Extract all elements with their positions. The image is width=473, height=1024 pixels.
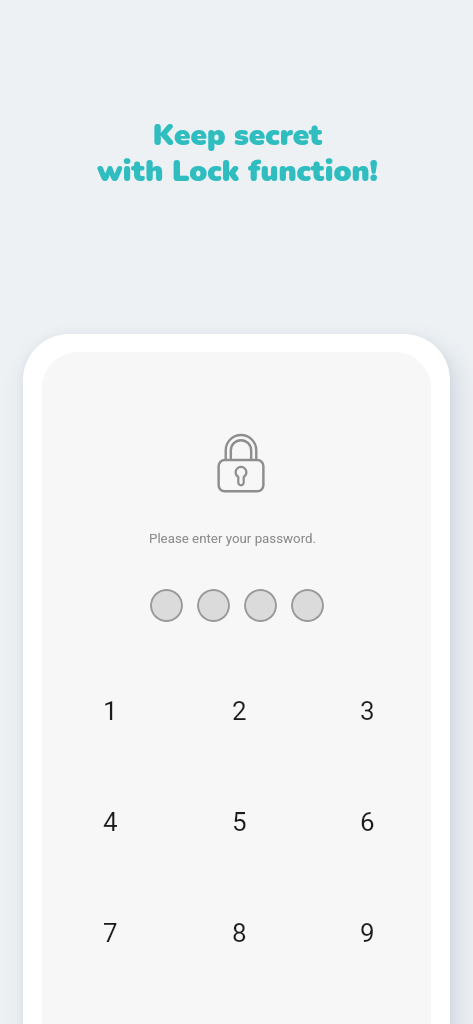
button[interactable]: 1 bbox=[46, 655, 175, 766]
staticText: 2 bbox=[232, 696, 247, 726]
button[interactable]: 7 bbox=[46, 877, 175, 988]
button[interactable]: 2 bbox=[175, 655, 303, 766]
staticText: 8 bbox=[232, 918, 247, 948]
button[interactable]: 4 bbox=[46, 766, 175, 877]
staticText: Please enter your password. bbox=[149, 531, 317, 547]
button[interactable]: 3 bbox=[303, 655, 431, 766]
other: Locked bbox=[215, 431, 267, 493]
staticText: 9 bbox=[360, 918, 375, 948]
button[interactable]: 8 bbox=[175, 877, 303, 988]
staticText: 5 bbox=[232, 807, 247, 837]
staticText: 3 bbox=[360, 696, 375, 726]
staticText: Keep secret with Lock function! bbox=[97, 115, 378, 191]
button[interactable]: 6 bbox=[303, 766, 431, 877]
staticText: 7 bbox=[103, 918, 118, 948]
staticText: 4 bbox=[103, 807, 118, 837]
staticText: 1 bbox=[103, 696, 118, 726]
staticText: 6 bbox=[360, 807, 375, 837]
button[interactable]: 5 bbox=[175, 766, 303, 877]
button[interactable]: 9 bbox=[303, 877, 431, 988]
